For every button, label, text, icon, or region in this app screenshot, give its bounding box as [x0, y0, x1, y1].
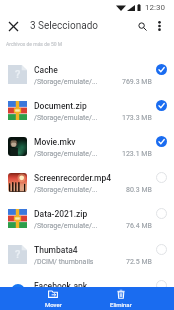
button[interactable]: Not selected	[153, 169, 169, 185]
button[interactable]: Selected	[153, 133, 169, 149]
staticText: Eliminar	[110, 301, 132, 308]
button[interactable]: Screenrecorder.mp4	[0, 158, 174, 194]
staticText: 3 Seleccionado	[30, 20, 98, 32]
button[interactable]: Document.zip	[0, 86, 174, 122]
staticText: Archivos de más de 50 M	[6, 41, 63, 47]
button[interactable]: Search	[135, 19, 150, 34]
button[interactable]: ?	[0, 230, 174, 266]
staticText: Movie.mkv	[34, 137, 76, 147]
staticText: /Storage/emulate/...	[34, 114, 98, 122]
staticText: 173.3 MB	[122, 114, 152, 122]
staticText: 76.4 MB	[126, 222, 152, 230]
button[interactable]: Mover	[19, 287, 87, 310]
button[interactable]: Close selection	[5, 18, 21, 34]
staticText: 12:30	[145, 3, 165, 12]
staticText: Thumbata4	[34, 245, 78, 255]
button[interactable]: Not selected	[153, 277, 169, 293]
staticText: Facebook.apk	[34, 281, 88, 291]
staticText: /Storage/emulate/...	[34, 78, 98, 86]
staticText: Cache	[34, 65, 58, 75]
staticText: /Storage/emulate/...	[34, 186, 98, 194]
button[interactable]: Facebook.apk	[0, 266, 174, 302]
staticText: 80.3 MB	[126, 186, 152, 194]
staticText: Screenrecorder.mp4	[34, 173, 112, 183]
button[interactable]: Data-2021.zip	[0, 194, 174, 230]
button[interactable]: Movie.mkv	[0, 122, 174, 158]
staticText: /Storage/emulate/...	[34, 150, 98, 158]
staticText: ?	[15, 248, 21, 261]
staticText: Document.zip	[34, 101, 87, 111]
staticText: 123.1 MB	[122, 150, 152, 158]
button[interactable]: Not selected	[153, 205, 169, 221]
staticText: /Storage/emulate/...	[34, 294, 98, 302]
button[interactable]: ?	[0, 50, 174, 86]
button[interactable]: Selected	[153, 97, 169, 113]
staticText: 769.3 MB	[122, 78, 152, 86]
button[interactable]: Selected	[153, 61, 169, 77]
button[interactable]: Eliminar	[87, 287, 155, 310]
staticText: ?	[15, 68, 21, 81]
staticText: 72.5 MB	[126, 258, 152, 266]
button[interactable]: Not selected	[153, 241, 169, 257]
staticText: /Storage/emulate/...	[34, 222, 98, 230]
staticText: Mover	[45, 301, 62, 308]
staticText: Data-2021.zip	[34, 209, 88, 219]
button[interactable]: More options	[152, 19, 166, 33]
staticText: /DCIM/ thumbnails	[34, 258, 94, 266]
